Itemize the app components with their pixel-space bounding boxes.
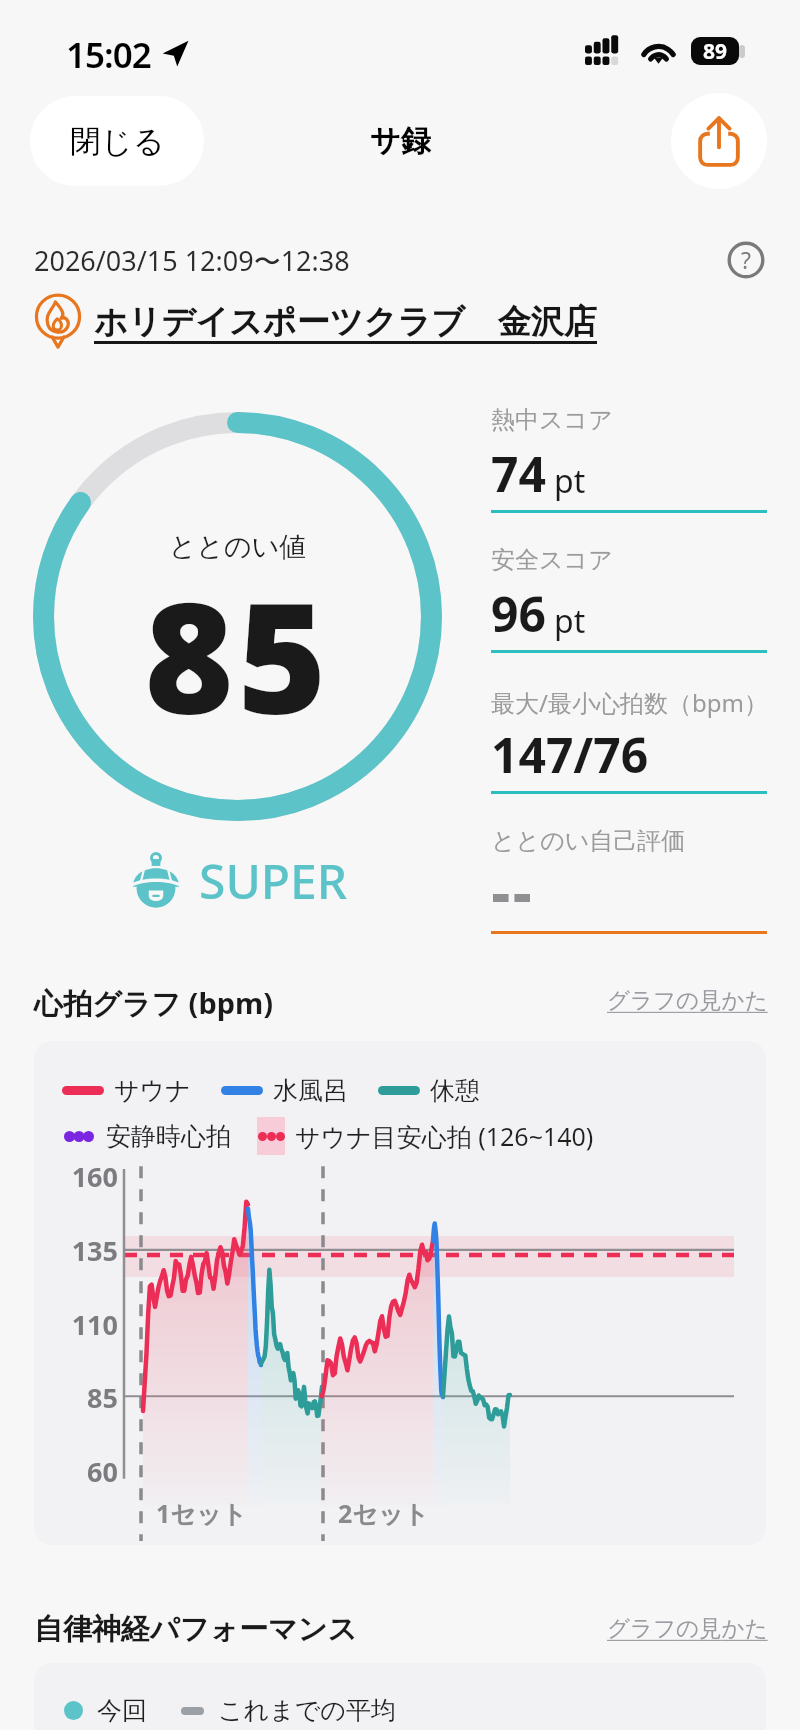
staticText: 2セット [338, 1496, 430, 1530]
button[interactable]: 閉じる [30, 96, 204, 186]
staticText: 60 [54, 1453, 118, 1490]
staticText: 96 [491, 581, 546, 646]
staticText: 85 [33, 551, 442, 758]
button[interactable]: ホリデイスポーツクラブ 金沢店 [30, 292, 597, 348]
staticText: サウナ [114, 1075, 191, 1106]
staticText: pt [554, 599, 586, 643]
staticText: 最大/最小心拍数（bpm） [491, 686, 768, 719]
staticText: pt [554, 459, 586, 503]
staticText: サ録 [370, 122, 431, 160]
button[interactable]: Share [671, 93, 767, 189]
staticText: 熱中スコア [491, 405, 613, 435]
staticText: 110 [54, 1306, 118, 1343]
staticText: 安静時心拍 [106, 1121, 231, 1152]
staticText: 160 [54, 1158, 118, 1195]
staticText: 水風呂 [273, 1075, 348, 1106]
staticText: 今回 [97, 1695, 147, 1726]
button[interactable]: グラフの見かた [607, 986, 768, 1014]
staticText: 15:02 [66, 31, 151, 79]
button[interactable]: グラフの見かた [607, 1614, 768, 1642]
staticText: ととのい自己評価 [491, 826, 686, 856]
staticText: 2026/03/15 12:09〜12:38 [34, 242, 350, 279]
button[interactable]: Help [726, 240, 766, 280]
staticText: 135 [54, 1232, 118, 1269]
staticText: 安全スコア [491, 545, 613, 575]
staticText: サウナ目安心拍 (126~140) [295, 1119, 594, 1153]
staticText: ホリデイスポーツクラブ 金沢店 [94, 298, 597, 343]
staticText: 1セット [156, 1496, 248, 1530]
staticText: これまでの平均 [218, 1695, 396, 1726]
staticText: グラフの見かた [607, 986, 768, 1014]
staticText: 74 [491, 441, 546, 506]
staticText: 閉じる [70, 122, 165, 161]
staticText: 休憩 [430, 1075, 480, 1106]
staticText: 自律神経パフォーマンス [34, 1611, 358, 1648]
staticText: ? [741, 244, 751, 275]
staticText: SUPER [199, 848, 348, 913]
staticText: グラフの見かた [607, 1614, 768, 1642]
staticText: 89 [703, 37, 728, 65]
staticText: ととのい値 [33, 530, 442, 564]
staticText: 147/76 [491, 722, 649, 787]
staticText: 心拍グラフ (bpm) [34, 983, 274, 1023]
staticText: 85 [54, 1379, 118, 1416]
